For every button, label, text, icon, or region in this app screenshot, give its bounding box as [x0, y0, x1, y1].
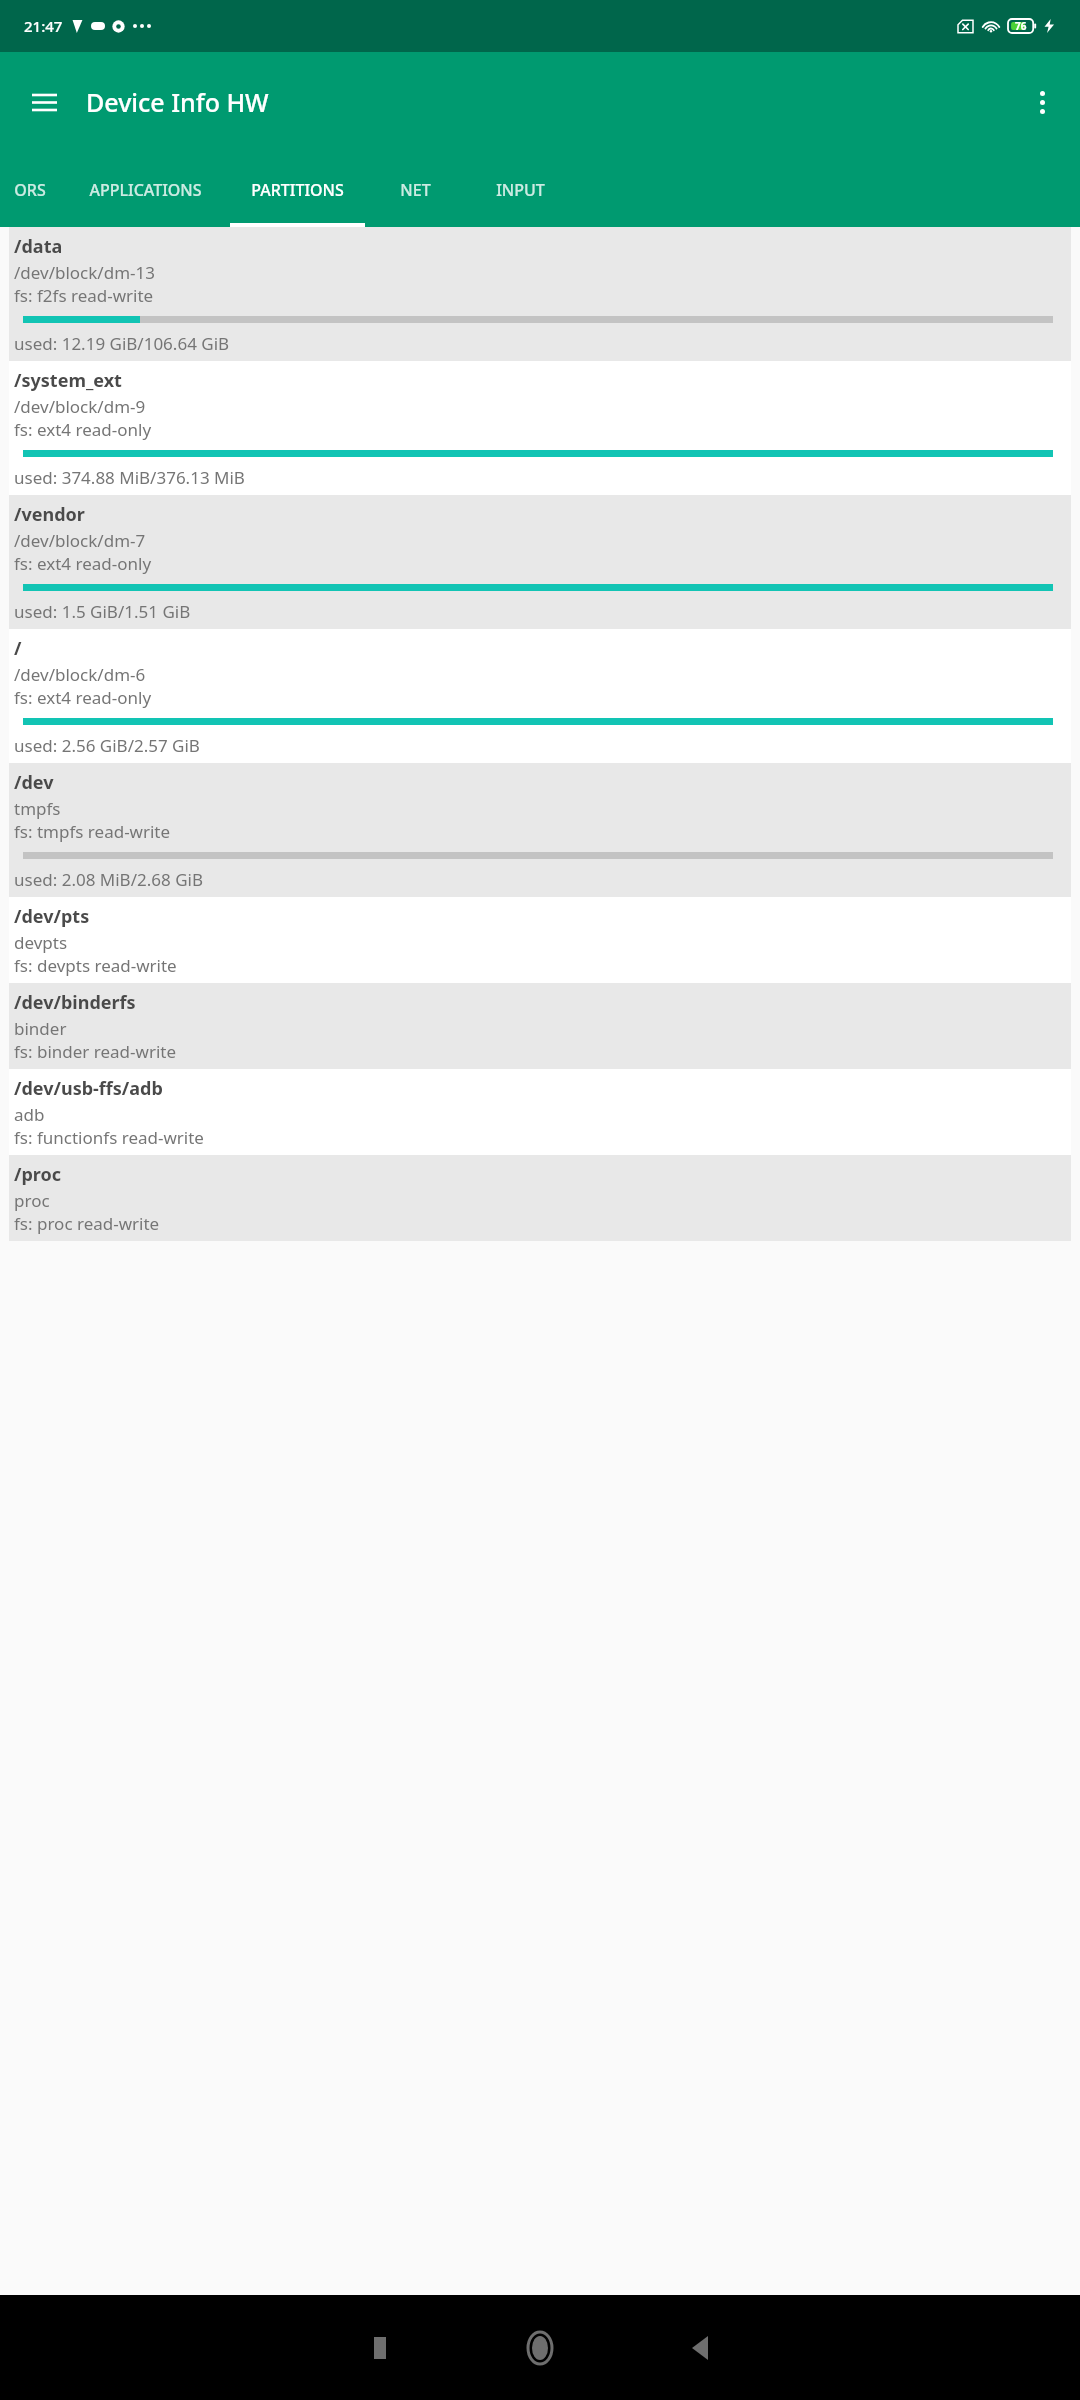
staticText: fs: ext4 read-only — [14, 686, 152, 709]
button[interactable]: /dev/pts — [9, 897, 1071, 983]
button[interactable]: /dev — [9, 763, 1071, 897]
button[interactable]: More options — [1018, 78, 1066, 126]
staticText: /system_ext — [14, 368, 122, 393]
staticText: /dev/usb-ffs/adb — [14, 1076, 163, 1101]
staticText: /dev/block/dm-7 — [14, 529, 146, 552]
staticText: ORS — [14, 179, 46, 201]
staticText: devpts — [14, 931, 68, 954]
staticText: used: 12.19 GiB/106.64 GiB — [14, 332, 230, 355]
button[interactable]: APPLICATIONS — [60, 152, 230, 227]
staticText: fs: functionfs read-write — [14, 1126, 204, 1149]
button[interactable]: Recent apps — [300, 2295, 460, 2400]
staticText: fs: devpts read-write — [14, 954, 177, 977]
staticText: /dev/pts — [14, 904, 90, 929]
staticText: tmpfs — [14, 797, 61, 820]
staticText: proc — [14, 1189, 50, 1212]
staticText: fs: ext4 read-only — [14, 552, 152, 575]
staticText: / — [14, 636, 22, 661]
button[interactable]: /system_ext — [9, 361, 1071, 495]
button[interactable]: /vendor — [9, 495, 1071, 629]
staticText: binder — [14, 1017, 67, 1040]
staticText: fs: f2fs read-write — [14, 284, 154, 307]
staticText: NET — [400, 179, 431, 201]
staticText: fs: proc read-write — [14, 1212, 160, 1235]
button[interactable]: /dev/usb-ffs/adb — [9, 1069, 1071, 1155]
button[interactable]: Home — [460, 2295, 620, 2400]
staticText: 76 — [1015, 19, 1027, 33]
button[interactable]: INPUT — [465, 152, 575, 227]
staticText: /dev/block/dm-9 — [14, 395, 146, 418]
button[interactable]: /dev/binderfs — [9, 983, 1071, 1069]
staticText: /dev/binderfs — [14, 990, 136, 1015]
staticText: used: 1.5 GiB/1.51 GiB — [14, 600, 191, 623]
staticText: 21:47 — [24, 16, 63, 36]
button[interactable]: / — [9, 629, 1071, 763]
staticText: /vendor — [14, 502, 85, 527]
staticText: /dev/block/dm-6 — [14, 663, 146, 686]
button[interactable]: PARTITIONS — [230, 152, 365, 227]
button[interactable]: Open navigation drawer — [20, 78, 68, 126]
button[interactable]: ORS — [0, 152, 60, 227]
staticText: used: 2.08 MiB/2.68 GiB — [14, 868, 203, 891]
staticText: APPLICATIONS — [89, 179, 202, 201]
staticText: /dev — [14, 770, 54, 795]
staticText: /dev/block/dm-13 — [14, 261, 155, 284]
button[interactable]: Back — [620, 2295, 780, 2400]
staticText: /data — [14, 234, 63, 259]
staticText: /proc — [14, 1162, 62, 1187]
staticText: fs: binder read-write — [14, 1040, 177, 1063]
staticText: INPUT — [496, 179, 545, 201]
staticText: used: 2.56 GiB/2.57 GiB — [14, 734, 200, 757]
staticText: used: 374.88 MiB/376.13 MiB — [14, 466, 245, 489]
button[interactable]: /data — [9, 227, 1071, 361]
staticText: PARTITIONS — [251, 179, 344, 201]
staticText: adb — [14, 1103, 45, 1126]
button[interactable]: /proc — [9, 1155, 1071, 1241]
staticText: fs: ext4 read-only — [14, 418, 152, 441]
button[interactable]: NET — [365, 152, 465, 227]
staticText: Device Info HW — [86, 85, 269, 119]
staticText: fs: tmpfs read-write — [14, 820, 171, 843]
